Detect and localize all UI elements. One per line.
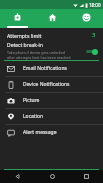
staticText: Take photo if device gets unlocked [7,50,65,55]
staticText: Alert message [23,129,57,136]
button[interactable]: Profile [69,9,103,28]
staticText: Device Notifications [23,81,70,88]
button[interactable]: Picture [0,93,103,108]
button[interactable]: Location [0,109,103,124]
staticText: 3 [92,31,96,39]
button[interactable]: Security [0,9,35,28]
button[interactable]: Email Notifications [0,61,103,76]
button[interactable]: Recents [69,170,103,183]
staticText: Picture [23,97,40,104]
staticText: Detect break-in [7,42,43,49]
button[interactable]: Back [0,170,35,183]
button[interactable]: Device Notifications [0,77,103,92]
button[interactable]: Detect break-in toggle [85,47,98,56]
button[interactable]: Attempts limit [0,28,103,42]
staticText: Attempts limit [7,32,42,39]
staticText: Location [23,113,44,120]
staticText: Email Notifications [23,65,67,72]
staticText: after attempts limit has been reached [7,55,71,60]
staticText: 18:00 [89,2,101,8]
button[interactable]: Home [35,170,69,183]
button[interactable]: Home [35,9,69,28]
button[interactable]: Detect break-in [0,42,103,60]
button[interactable]: Alert message [0,125,103,140]
